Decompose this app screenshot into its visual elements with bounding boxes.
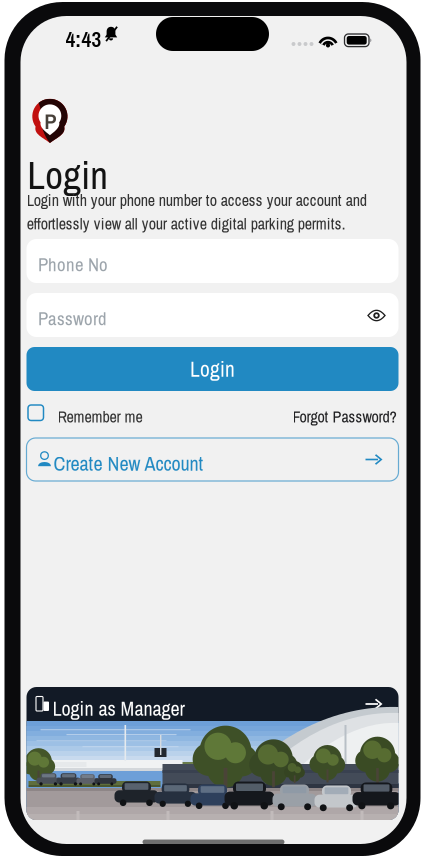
button[interactable]: Login as Manager <box>26 687 398 820</box>
staticText: Password <box>38 306 107 331</box>
staticText: Login with your phone number to access y… <box>27 189 367 211</box>
staticText: 4:43 <box>65 25 101 54</box>
button[interactable]: Login <box>26 347 398 391</box>
button[interactable]: Remember me <box>26 402 176 425</box>
button[interactable]: Create New Account <box>26 438 398 481</box>
staticText: Login as Manager <box>52 695 184 722</box>
staticText: Forgot Password? <box>292 406 396 428</box>
staticText: Login <box>190 355 235 383</box>
staticText: Login <box>27 149 108 201</box>
staticText: effortlessly view all your active digita… <box>27 213 346 235</box>
button[interactable]: Forgot Password? <box>292 402 398 425</box>
staticText: P <box>44 106 56 136</box>
staticText: Phone No <box>38 252 108 277</box>
staticText: Remember me <box>57 406 142 428</box>
staticText: Create New Account <box>53 450 203 477</box>
